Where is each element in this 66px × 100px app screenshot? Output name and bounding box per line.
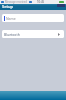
staticText: Bluetooth — [4, 32, 20, 37]
button[interactable]: Setup — [0, 4, 66, 9]
staticText: Name — [6, 16, 16, 21]
staticText: 10:45 — [37, 0, 45, 4]
staticText: Setup — [2, 4, 14, 9]
staticText: Message received — [5, 0, 27, 4]
button[interactable]: Name — [2, 14, 64, 22]
other: Expand — [58, 33, 60, 36]
button[interactable]: Bluetooth — [2, 30, 64, 38]
